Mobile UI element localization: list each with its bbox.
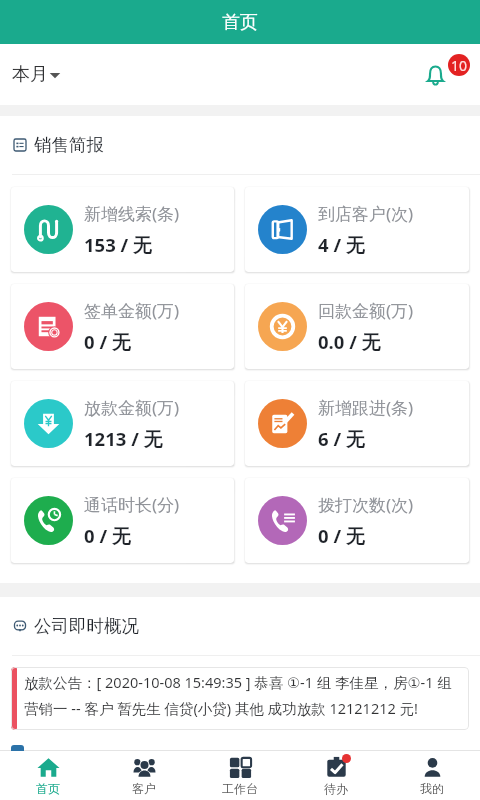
button[interactable]: 通话时长(分) — [11, 478, 234, 563]
staticText: 回款金额(万) — [318, 299, 414, 322]
staticText: 待办 — [324, 781, 348, 796]
staticText: 153 / 无 — [84, 232, 152, 257]
staticText: 拨打次数(次) — [318, 493, 414, 516]
staticText: 4 / 无 — [318, 232, 365, 257]
staticText: 0 / 无 — [84, 329, 131, 354]
staticText: 通话时长(分) — [84, 493, 180, 516]
staticText: 首页 — [36, 781, 60, 796]
staticText: 我的 — [420, 781, 444, 796]
button[interactable]: 新增线索(条) — [11, 187, 234, 272]
button[interactable]: 首页 — [0, 751, 96, 800]
button[interactable]: 放款金额(万) — [11, 381, 234, 466]
button[interactable]: 客户 — [96, 751, 192, 800]
staticText: 0.0 / 无 — [318, 329, 381, 354]
staticText: 销售简报 — [34, 134, 104, 156]
button[interactable]: 待办 — [288, 751, 384, 800]
button[interactable]: 拨打次数(次) — [245, 478, 469, 563]
staticText: 工作台 — [222, 781, 258, 796]
button[interactable]: 我的 — [384, 751, 480, 800]
staticText: 新增线索(条) — [84, 202, 180, 225]
staticText: 0 / 无 — [318, 523, 365, 548]
staticText: 0 / 无 — [84, 523, 131, 548]
button[interactable]: 工作台 — [192, 751, 288, 800]
staticText: 新增跟进(条) — [318, 396, 414, 419]
staticText: 公司即时概况 — [34, 615, 139, 637]
button[interactable]: Notifications — [422, 53, 466, 97]
staticText: 10 — [451, 56, 468, 75]
button[interactable]: 回款金额(万) — [245, 284, 469, 369]
staticText: 放款金额(万) — [84, 396, 180, 419]
button[interactable]: 放款公告：[ 2020-10-08 15:49:35 ] 恭喜 ①-1 组 李佳… — [11, 667, 469, 730]
staticText: 签单金额(万) — [84, 299, 180, 322]
staticText: 1213 / 无 — [84, 426, 163, 451]
staticText: 到店客户(次) — [318, 202, 414, 225]
button[interactable]: 新增跟进(条) — [245, 381, 469, 466]
button[interactable]: 本月 — [12, 57, 61, 92]
staticText: 6 / 无 — [318, 426, 365, 451]
button[interactable]: 到店客户(次) — [245, 187, 469, 272]
button[interactable]: 签单金额(万) — [11, 284, 234, 369]
staticText: 首页 — [222, 11, 258, 34]
staticText: 本月 — [12, 63, 48, 86]
staticText: 放款公告：[ 2020-10-08 15:49:35 ] 恭喜 ①-1 组 李佳… — [24, 672, 459, 719]
staticText: 客户 — [132, 781, 156, 796]
